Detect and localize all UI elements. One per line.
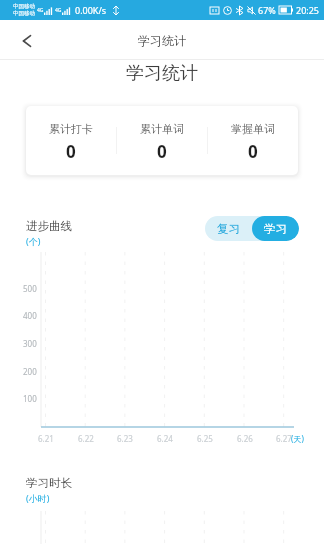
- staticText: 累计单词: [140, 122, 184, 136]
- staticText: 掌握单词: [231, 122, 275, 136]
- staticText: 中国移动: [13, 10, 35, 17]
- staticText: 20:25: [296, 4, 320, 16]
- staticText: 6.21: [38, 433, 54, 444]
- staticText: 学习统计: [0, 33, 324, 48]
- staticText: 300: [23, 338, 37, 349]
- staticText: 4G: [37, 7, 44, 14]
- button[interactable]: 复习: [205, 216, 252, 241]
- staticText: (个): [26, 235, 41, 247]
- staticText: 500: [23, 283, 37, 294]
- staticText: 4G: [55, 7, 62, 14]
- staticText: 6.24: [157, 433, 173, 444]
- button[interactable]: 掌握单词: [208, 106, 298, 175]
- staticText: 6.22: [78, 433, 94, 444]
- staticText: 6.23: [117, 433, 133, 444]
- staticText: 6.26: [237, 433, 253, 444]
- staticText: 进步曲线: [26, 219, 72, 233]
- button[interactable]: Back: [13, 27, 41, 55]
- button[interactable]: 累计单词: [117, 106, 207, 175]
- button[interactable]: 学习: [252, 216, 299, 241]
- staticText: 学习时长: [26, 476, 72, 490]
- staticText: 100: [23, 393, 37, 404]
- staticText: 学习统计: [0, 62, 324, 85]
- button[interactable]: 累计打卡: [26, 106, 116, 175]
- staticText: 400: [23, 310, 37, 321]
- staticText: 中国移动: [13, 3, 35, 10]
- staticText: (天): [291, 433, 304, 444]
- staticText: 0: [157, 140, 167, 163]
- staticText: 学习: [264, 222, 287, 236]
- staticText: 67%: [258, 4, 276, 16]
- staticText: 0.00K/s: [75, 4, 107, 16]
- staticText: (小时): [26, 492, 50, 504]
- staticText: 6.25: [197, 433, 213, 444]
- staticText: 累计打卡: [49, 122, 93, 136]
- staticText: 200: [23, 366, 37, 377]
- staticText: 复习: [217, 222, 240, 236]
- staticText: 6.27: [276, 433, 292, 444]
- staticText: 0: [248, 140, 258, 163]
- staticText: 0: [66, 140, 76, 163]
